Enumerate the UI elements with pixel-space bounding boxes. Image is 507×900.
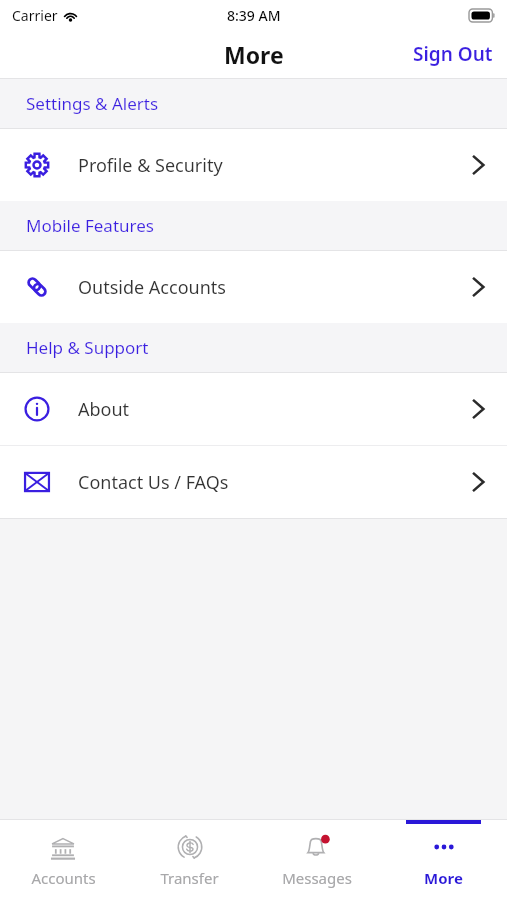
staticText: Contact Us / FAQs	[78, 470, 229, 495]
button[interactable]: Messages	[253, 820, 380, 900]
staticText: Settings & Alerts	[26, 92, 159, 115]
staticText: Outside Accounts	[78, 275, 226, 300]
staticText: 8:39 AM	[227, 6, 281, 25]
staticText: Messages	[282, 868, 352, 888]
staticText: Carrier	[12, 6, 58, 25]
staticText: More	[224, 39, 284, 70]
button[interactable]: Accounts	[0, 820, 126, 900]
staticText: About	[78, 397, 130, 422]
button[interactable]: Contact Us / FAQs	[0, 446, 507, 518]
staticText: Transfer	[160, 868, 219, 888]
staticText: Mobile Features	[26, 214, 154, 237]
staticText: Help & Support	[26, 336, 149, 359]
staticText: More	[424, 868, 463, 888]
staticText: Sign Out	[413, 41, 493, 67]
staticText: Profile & Security	[78, 153, 223, 178]
staticText: Accounts	[31, 868, 96, 888]
button[interactable]: Outside Accounts	[0, 251, 507, 323]
button[interactable]: Transfer	[126, 820, 253, 900]
button[interactable]: More	[380, 820, 507, 900]
button[interactable]: About	[0, 373, 507, 445]
button[interactable]: Sign Out	[399, 33, 507, 75]
button[interactable]: Profile & Security	[0, 129, 507, 201]
